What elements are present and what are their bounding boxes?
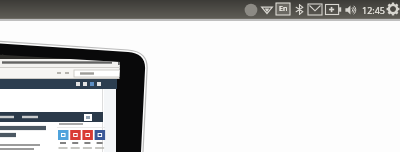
- button[interactable]: Keyboard layout English: [276, 3, 290, 15]
- button[interactable]: 12:45: [361, 2, 387, 17]
- button[interactable]: Volume: [344, 3, 358, 17]
- staticText: En: [279, 4, 288, 14]
- button[interactable]: Network: [260, 3, 274, 17]
- staticText: 12:45: [362, 4, 386, 16]
- button[interactable]: Battery: [325, 4, 341, 15]
- button[interactable]: Bluetooth: [293, 3, 306, 16]
- button[interactable]: Messaging: [308, 4, 322, 15]
- button[interactable]: System settings: [386, 2, 400, 16]
- button[interactable]: User menu: [244, 3, 258, 17]
